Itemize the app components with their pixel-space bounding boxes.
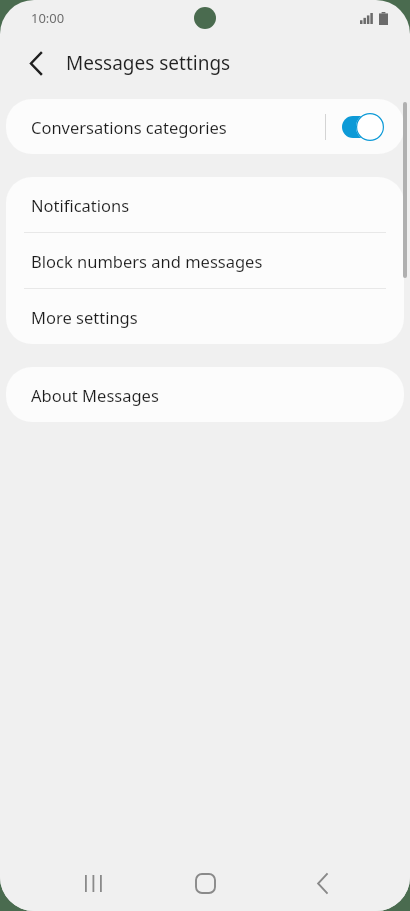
staticText: Messages settings xyxy=(66,50,231,76)
button[interactable]: Back xyxy=(16,43,56,83)
button[interactable]: About Messages xyxy=(6,367,404,422)
button[interactable]: More settings xyxy=(6,289,404,344)
staticText: 10:00 xyxy=(31,9,65,27)
button[interactable]: Notifications xyxy=(6,177,404,232)
button[interactable]: Block numbers and messages xyxy=(6,233,404,288)
staticText: Conversations categories xyxy=(31,116,325,138)
staticText: Notifications xyxy=(31,194,130,216)
staticText: Block numbers and messages xyxy=(31,250,263,272)
button[interactable]: Back xyxy=(298,859,346,907)
button[interactable]: Conversations categories toggle xyxy=(342,113,384,141)
button[interactable]: Home xyxy=(181,859,229,907)
staticText: About Messages xyxy=(31,384,159,406)
button[interactable]: Recent apps xyxy=(68,859,116,907)
button[interactable]: Conversations categories xyxy=(6,99,404,154)
staticText: More settings xyxy=(31,306,138,328)
